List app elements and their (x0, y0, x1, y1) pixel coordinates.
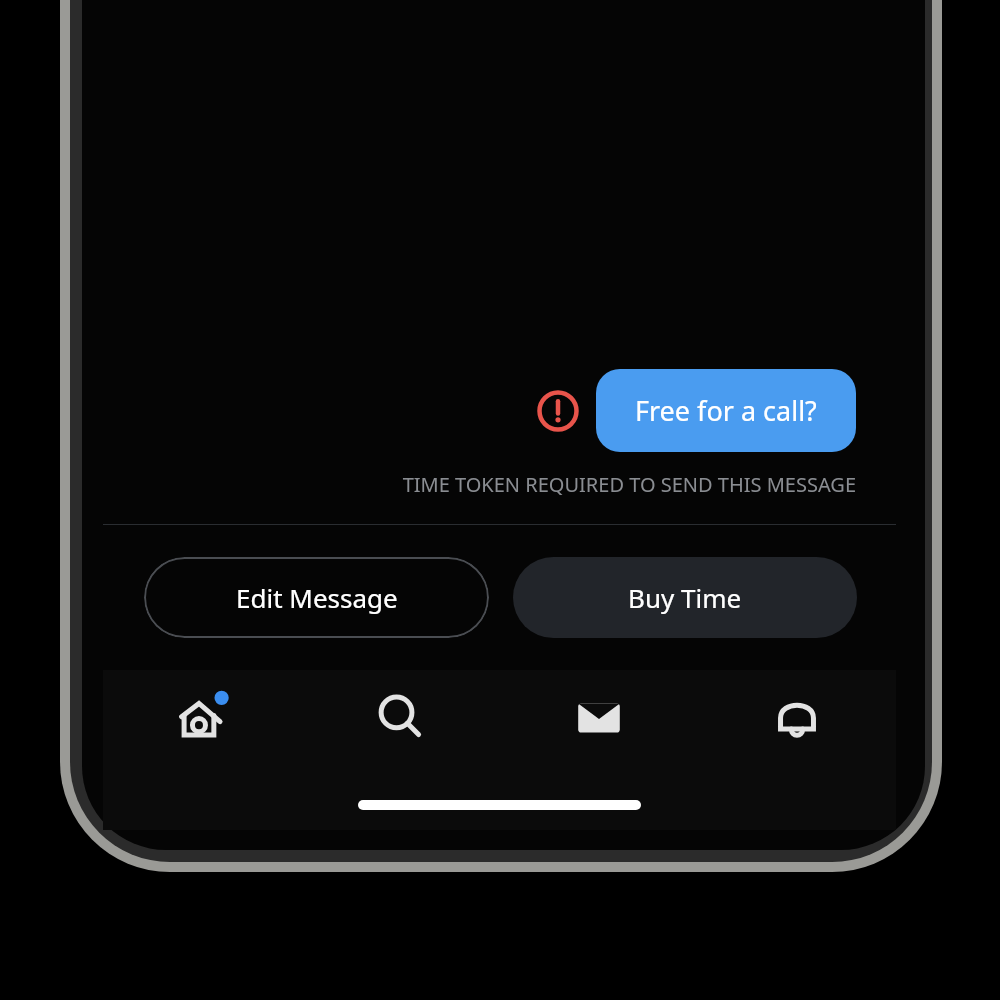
staticText: TIME TOKEN REQUIRED TO SEND THIS MESSAGE (103, 471, 856, 498)
button[interactable]: Buy Time (513, 557, 857, 638)
button[interactable]: Free for a call? (596, 369, 856, 452)
staticText: Buy Time (628, 580, 742, 615)
staticText: Edit Message (236, 580, 398, 615)
button[interactable]: Home (103, 670, 302, 765)
staticText: Free for a call? (635, 392, 817, 429)
button[interactable]: Notifications (698, 670, 896, 765)
button[interactable]: Edit Message (144, 557, 489, 638)
button[interactable]: Message not sent (520, 373, 596, 449)
button[interactable]: Search (302, 670, 500, 765)
button[interactable]: Messages (500, 670, 698, 765)
